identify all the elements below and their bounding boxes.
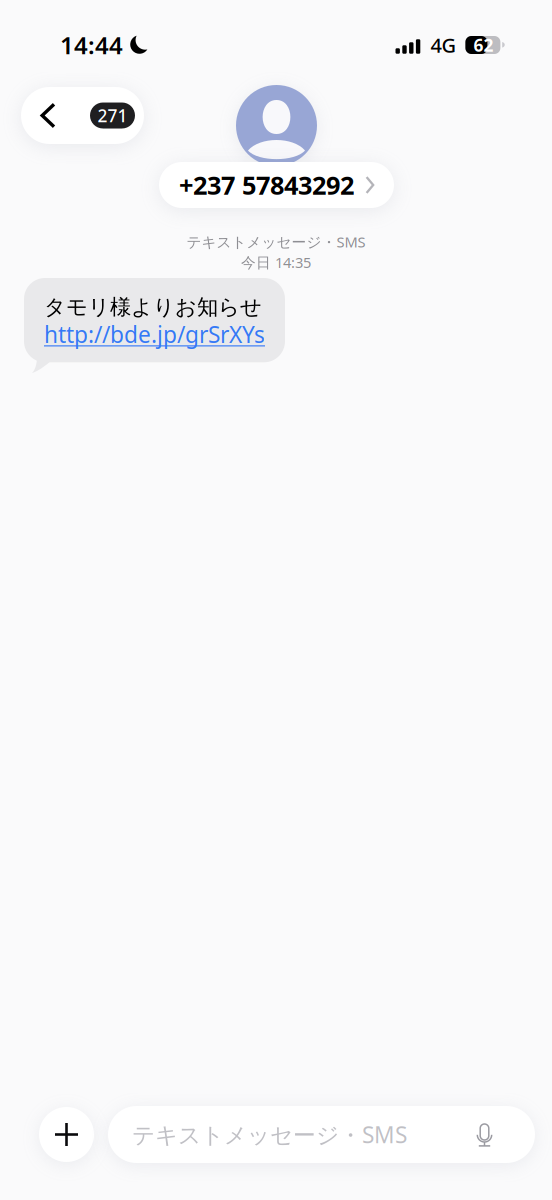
button[interactable]: Contact photo [236,85,317,166]
button[interactable]: More options [39,1107,94,1162]
staticText: 14:44 [60,29,123,61]
staticText: 4G [430,32,456,58]
staticText: タモリ様よりお知らせ [44,294,262,320]
staticText: +237 57843292 [179,168,354,202]
staticText: 271 [97,104,127,127]
button[interactable]: Text message input [108,1106,535,1163]
button[interactable]: +237 57843292 [159,162,394,208]
staticText: 今日 14:35 [241,252,311,272]
staticText: テキストメッセージ・SMS [132,1119,407,1149]
staticText: テキストメッセージ・SMS [186,232,365,251]
staticText: http://bde.jp/grSrXYs [44,319,265,349]
staticText: 62 [473,33,493,56]
button[interactable]: Back [21,87,144,144]
